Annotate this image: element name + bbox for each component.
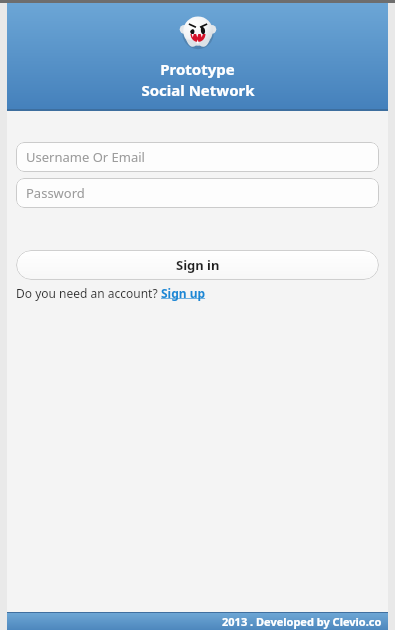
button[interactable]: Password (16, 178, 379, 208)
staticText: Prototype (160, 59, 235, 79)
staticText: Password (26, 184, 85, 202)
staticText: 2013 . Developed by Clevio.co (222, 614, 382, 629)
button[interactable]: Username Or Email (16, 142, 379, 172)
staticText: Sign in (176, 256, 220, 274)
other: App logo (176, 10, 220, 54)
staticText: Social Network (141, 80, 255, 100)
staticText: Username Or Email (26, 148, 145, 166)
button[interactable]: Sign in (16, 250, 379, 280)
button[interactable]: Sign up (161, 285, 206, 301)
staticText: Sign up (161, 285, 206, 301)
staticText: Do you need an account? (16, 285, 161, 301)
